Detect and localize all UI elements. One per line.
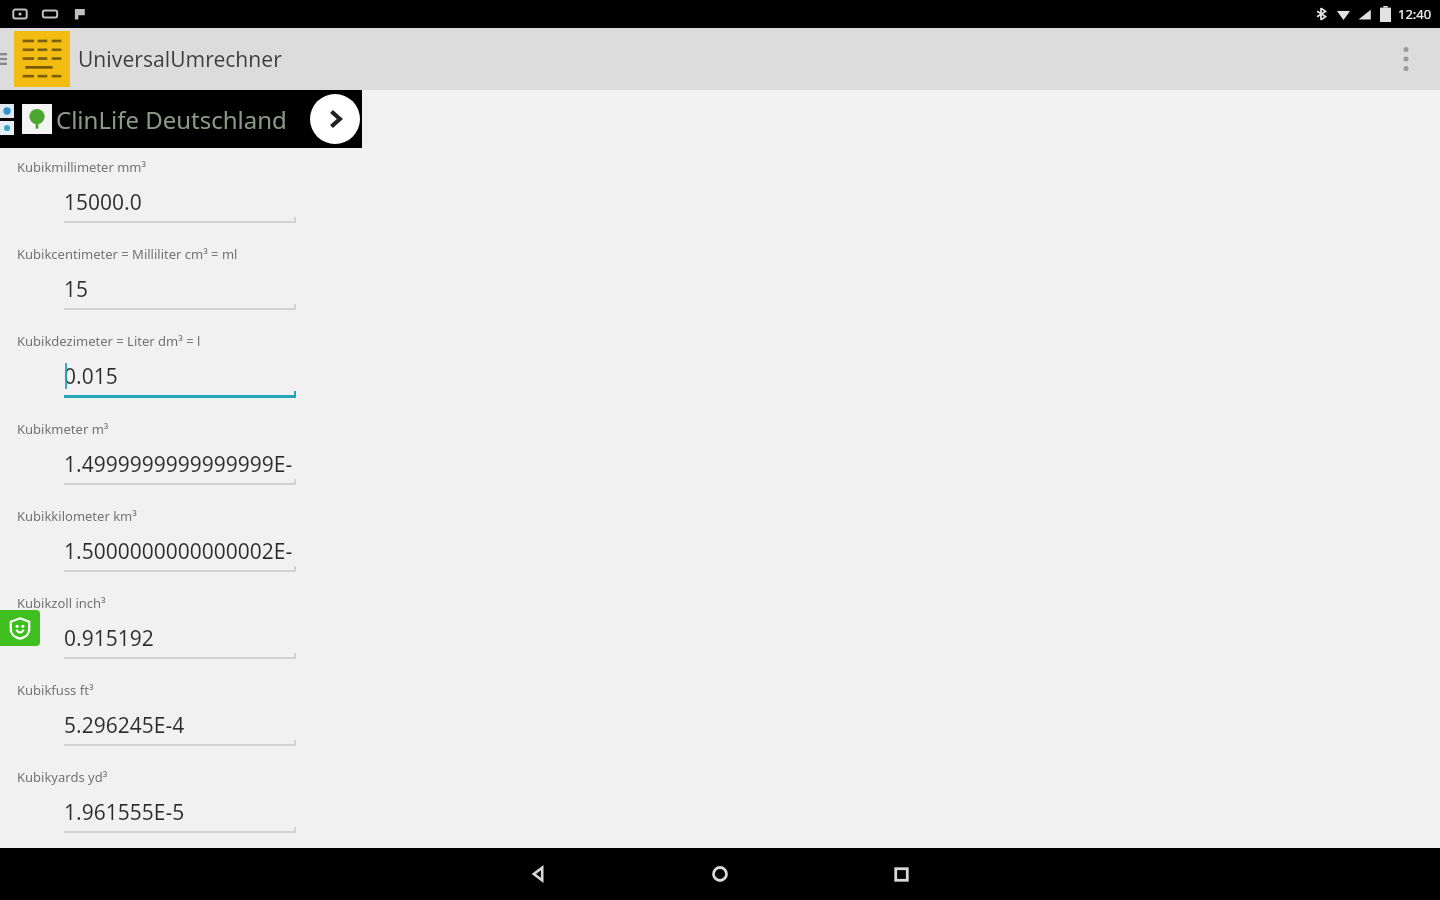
staticText: 1.961555E-5 [64, 798, 185, 827]
button[interactable]: ClinLife Deutschland [0, 90, 362, 148]
staticText: 1.4999999999999999E- [64, 450, 293, 479]
button[interactable]: Kubikmillimeter mm³ [0, 158, 1440, 245]
staticText: Kubikmeter m³ [17, 420, 109, 438]
staticText: Kubikcentimeter = Milliliter cm³ = ml [17, 245, 238, 263]
button[interactable]: Kubikfuss ft³ [0, 681, 1440, 768]
staticText: Kubikmillimeter mm³ [17, 158, 147, 176]
button[interactable]: Home [696, 850, 744, 898]
button[interactable]: Open advertisement [310, 94, 360, 144]
button[interactable]: Open navigation drawer [0, 39, 14, 79]
button[interactable]: Kubikyards yd³ [0, 768, 1440, 848]
button[interactable]: Kubikzoll inch³ [0, 594, 1440, 681]
staticText: UniversalUmrechner [78, 45, 282, 74]
staticText: Kubikdezimeter = Liter dm³ = l [17, 332, 201, 350]
staticText: Kubikyards yd³ [17, 768, 108, 786]
staticText: 5.296245E-4 [64, 711, 185, 740]
staticText: Kubikzoll inch³ [17, 594, 106, 612]
staticText: ClinLife Deutschland [56, 103, 287, 136]
button[interactable]: Security badge [0, 610, 40, 646]
button[interactable]: Kubikkilometer km³ [0, 507, 1440, 594]
staticText: 12:40 [1398, 5, 1432, 23]
button[interactable]: Kubikmeter m³ [0, 420, 1440, 507]
staticText: Kubikkilometer km³ [17, 507, 137, 525]
button[interactable]: Recent apps [877, 850, 925, 898]
staticText: 15 [64, 275, 89, 304]
button[interactable]: Kubikdezimeter = Liter dm³ = l [0, 332, 1440, 420]
staticText: 1.5000000000000002E- [64, 537, 293, 566]
staticText: Kubikfuss ft³ [17, 681, 94, 699]
button[interactable]: Kubikcentimeter = Milliliter cm³ = ml [0, 245, 1440, 332]
staticText: 15000.0 [64, 188, 142, 217]
button[interactable]: Back [515, 850, 563, 898]
button[interactable]: More options [1394, 37, 1418, 81]
staticText: 0.015 [64, 362, 118, 391]
staticText: 0.915192 [64, 624, 154, 653]
